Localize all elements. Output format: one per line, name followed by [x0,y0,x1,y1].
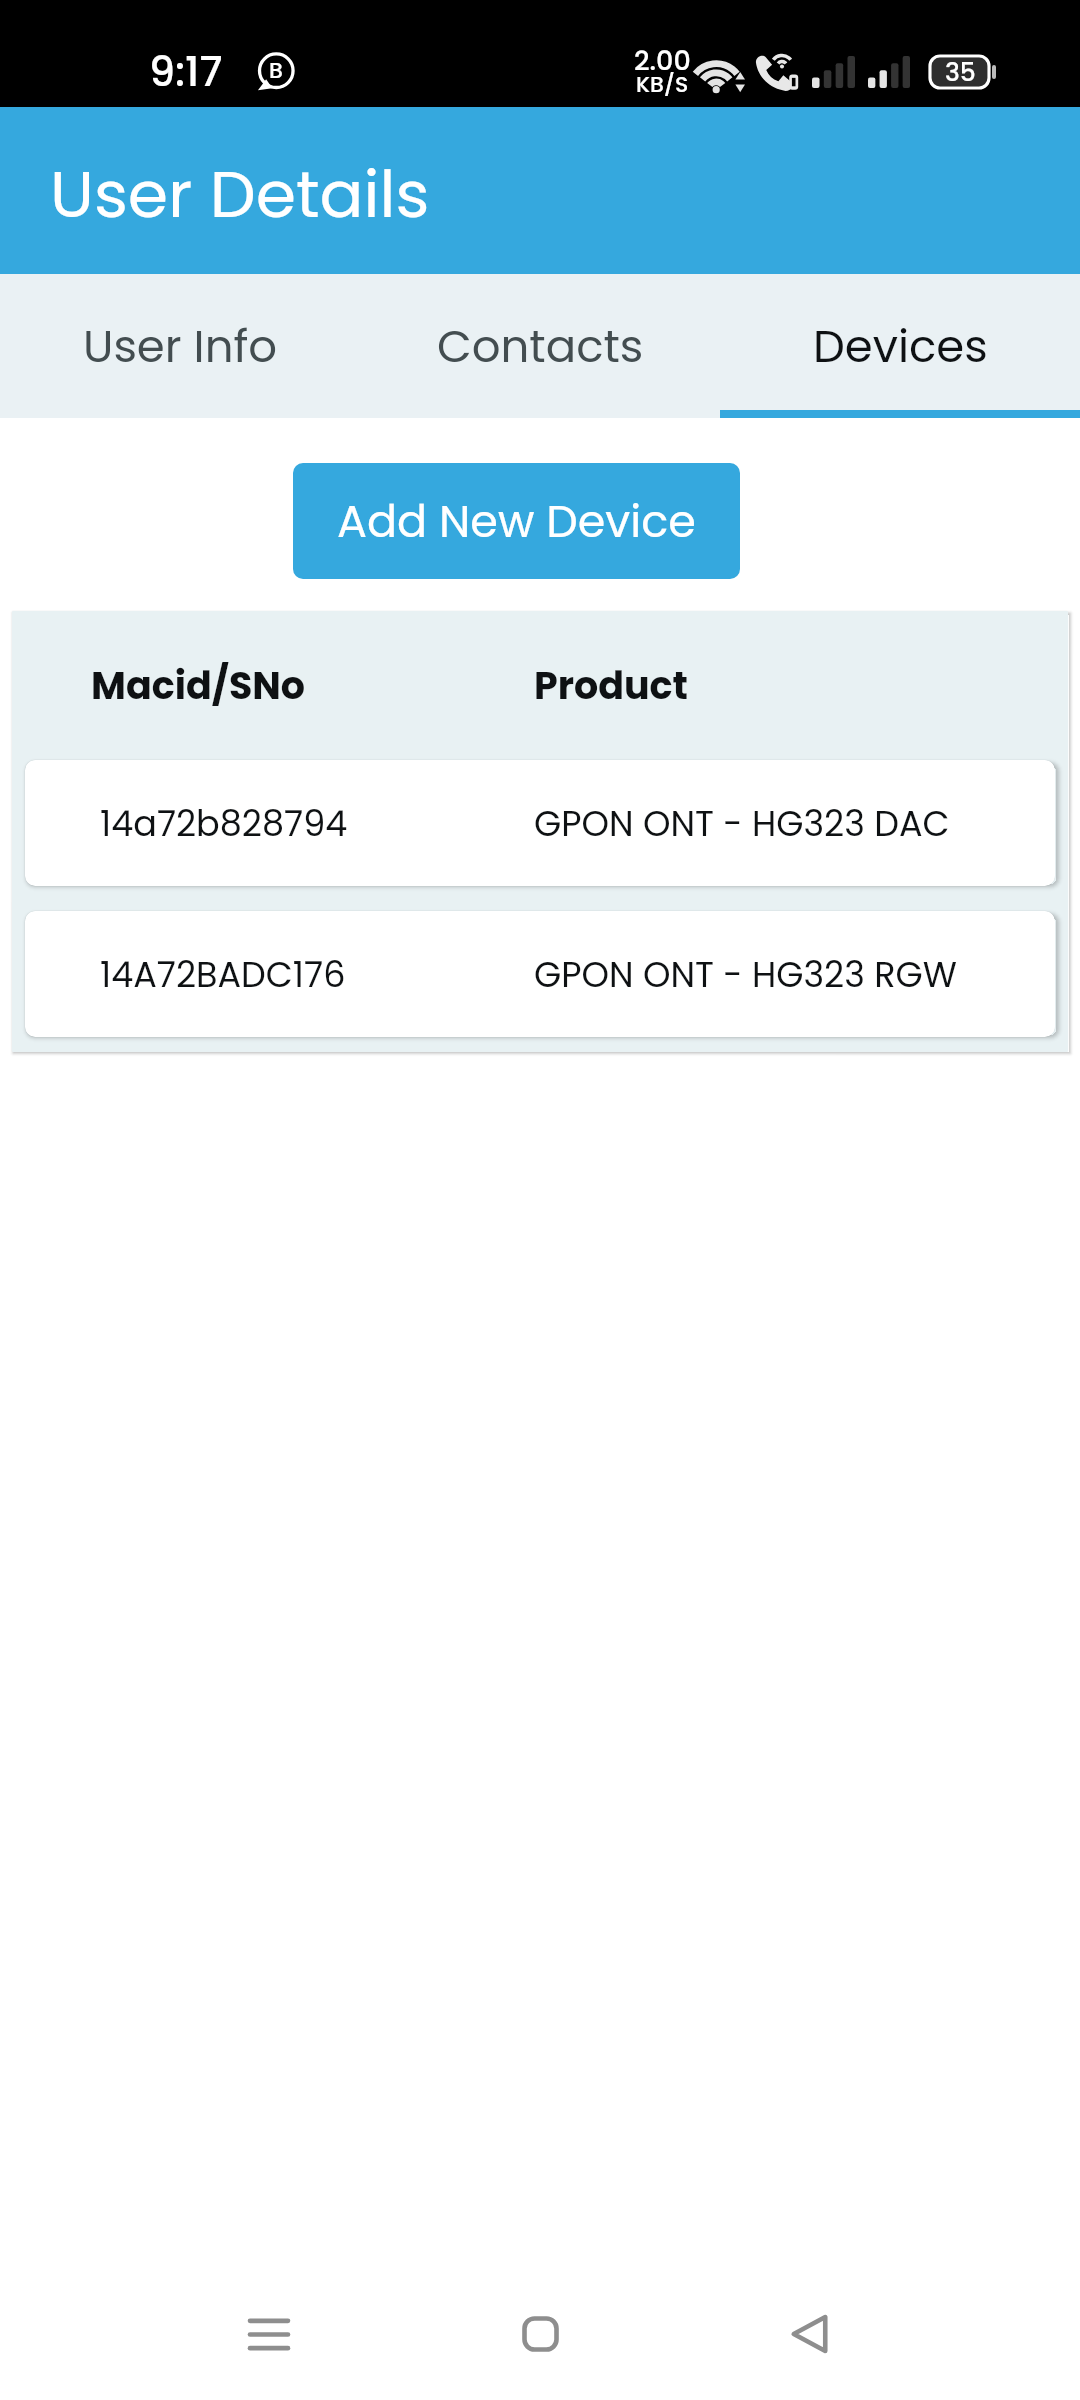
staticText: KB/S [636,69,689,100]
staticText: GPON ONT - HG323 DAC [534,799,950,848]
button[interactable]: User Info [0,274,360,418]
button[interactable]: 14A72BADC176 [25,911,1055,1037]
staticText: B [269,55,283,86]
button[interactable]: Contacts [360,274,720,418]
button[interactable]: Add New Device [293,463,740,579]
staticText: 35 [945,55,976,87]
staticText: Macid/SNo [91,659,306,712]
button[interactable]: Back [754,2279,864,2389]
staticText: Add New Device [337,490,696,552]
button[interactable]: 14a72b828794 [25,760,1055,886]
staticText: User Info [83,315,278,378]
staticText: 14A72BADC176 [100,950,346,999]
staticText: 2.00 [634,42,691,80]
staticText: GPON ONT - HG323 RGW [534,950,957,999]
button[interactable]: Home [485,2279,595,2389]
staticText: User Details [50,149,430,240]
staticText: 14a72b828794 [100,799,348,848]
button[interactable]: Recent apps [214,2279,324,2389]
button[interactable]: Devices [720,274,1080,418]
staticText: Product [534,659,689,712]
staticText: Contacts [437,315,644,378]
staticText: Devices [813,315,988,378]
staticText: 9:17 [149,43,223,100]
